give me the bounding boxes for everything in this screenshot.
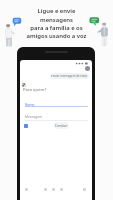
staticText: Nome [25,102,35,106]
staticText: enviar mensagem de texto [51,74,88,78]
button[interactable]: Attach [24,124,28,128]
staticText: Para quem? [23,87,47,93]
staticText: Ligue e envie mensagens para a família e… [0,7,113,39]
button[interactable]: Concluir [54,122,69,129]
button[interactable]: Tab 5 [80,185,89,194]
button[interactable]: Tab 2 [41,185,50,194]
button[interactable]: Tab 4 [57,185,66,194]
button[interactable]: Tab 3 [49,185,58,194]
button[interactable]: Tab 1 [22,185,31,194]
button[interactable]: enviar mensagem de texto [50,73,89,79]
button[interactable]: Account [85,66,90,71]
staticText: Mensagem [25,114,43,118]
staticText: Concluir [55,124,68,128]
